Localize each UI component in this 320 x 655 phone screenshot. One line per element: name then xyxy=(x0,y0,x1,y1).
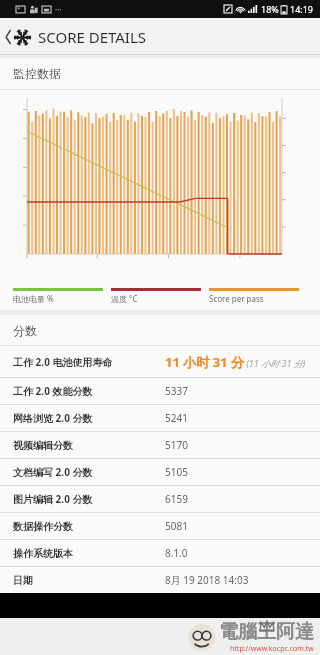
button[interactable]: 工作 2.0 效能分数 xyxy=(0,378,320,404)
staticText: 11 小时 31 分 (11 小时 31 分) xyxy=(165,353,306,371)
staticText: SCORE DETAILS xyxy=(38,27,147,47)
staticText: 8月 19 2018 14:03 xyxy=(165,573,249,587)
button[interactable]: Back to results xyxy=(0,23,155,51)
staticText: 温度 °C xyxy=(111,293,138,304)
staticText: 工作 2.0 效能分数 xyxy=(13,384,93,398)
staticText: 8.1.0 xyxy=(165,546,188,560)
button[interactable]: 日期 xyxy=(0,567,320,593)
staticText: 5105 xyxy=(165,465,188,479)
staticText: 電腦王阿達 xyxy=(219,620,314,644)
staticText: 文档编写 2.0 分数 xyxy=(13,465,93,479)
staticText: http://www.kocpc.com.tw xyxy=(230,644,314,654)
staticText: 14:19 xyxy=(290,3,314,15)
staticText: 18% xyxy=(261,3,279,15)
button[interactable]: 数据操作分数 xyxy=(0,513,320,539)
staticText: 5081 xyxy=(165,519,188,533)
staticText: 工作 2.0 电池使用寿命 xyxy=(13,355,113,369)
staticText: 操作系统版本 xyxy=(13,547,73,560)
staticText: 网络浏览 2.0 分数 xyxy=(13,411,93,425)
staticText: 视频编辑分数 xyxy=(13,439,73,452)
button[interactable]: 图片编辑 2.0 分数 xyxy=(0,486,320,512)
staticText: 数据操作分数 xyxy=(13,520,73,533)
staticText: 电池电量 % xyxy=(13,293,54,304)
staticText: 分数 xyxy=(13,323,37,338)
button[interactable]: 操作系统版本 xyxy=(0,540,320,566)
button[interactable]: 网络浏览 2.0 分数 xyxy=(0,405,320,431)
button[interactable]: 文档编写 2.0 分数 xyxy=(0,459,320,485)
staticText: ··· xyxy=(55,4,62,15)
button[interactable]: 工作 2.0 电池使用寿命 xyxy=(0,346,320,377)
staticText: 6159 xyxy=(165,492,188,506)
staticText: 5170 xyxy=(165,438,188,452)
staticText: 5337 xyxy=(165,384,188,398)
button[interactable]: 视频编辑分数 xyxy=(0,432,320,458)
staticText: 5241 xyxy=(165,411,188,425)
staticText: 日期 xyxy=(13,574,33,587)
staticText: Score per pass xyxy=(209,293,264,304)
staticText: 監控数据 xyxy=(13,66,61,81)
staticText: 图片编辑 2.0 分数 xyxy=(13,492,93,506)
